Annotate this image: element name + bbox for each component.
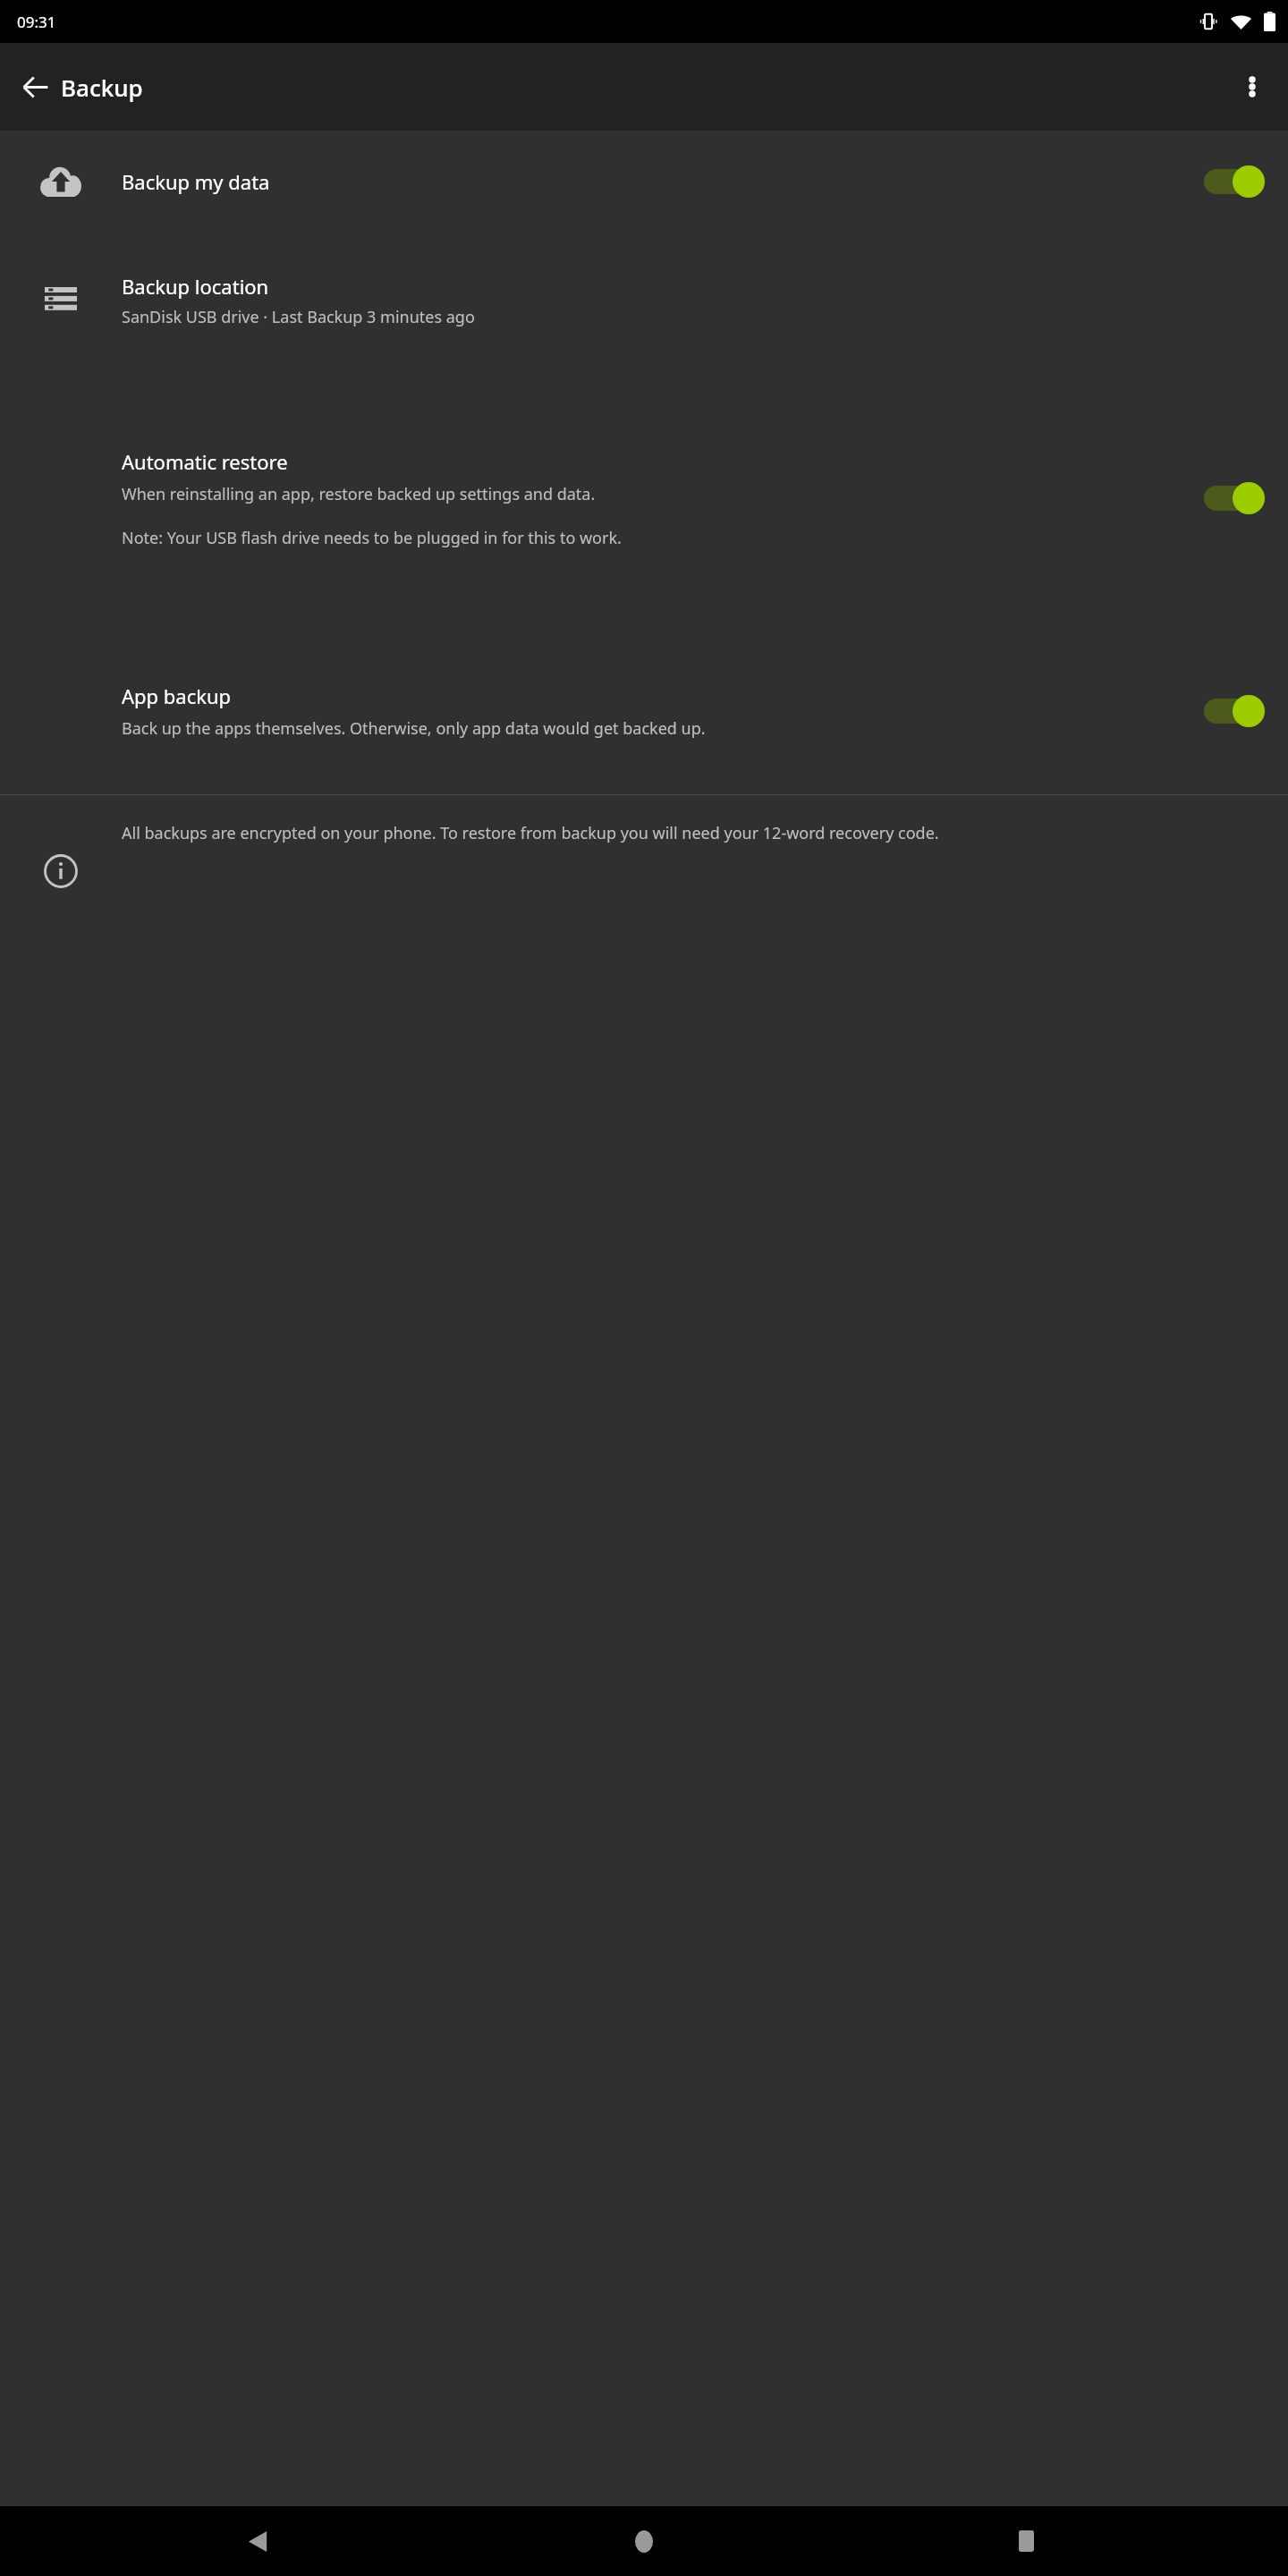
staticText: Backup my data xyxy=(122,168,1204,195)
button[interactable]: Back xyxy=(10,62,60,112)
button[interactable]: More options xyxy=(1227,62,1277,112)
staticText: 09:31 xyxy=(17,12,56,32)
button[interactable]: App backup xyxy=(0,628,1288,794)
staticText: All backups are encrypted on your phone.… xyxy=(122,822,1258,844)
button[interactable]: Toggle xyxy=(1204,164,1265,199)
staticText: Backup location xyxy=(122,273,269,300)
button[interactable]: Backup my data xyxy=(0,131,1288,233)
staticText: Back up the apps themselves. Otherwise, … xyxy=(122,717,706,740)
staticText: SanDisk USB drive · Last Backup 3 minute… xyxy=(122,306,475,328)
staticText: Note: Your USB flash drive needs to be p… xyxy=(122,527,622,549)
button[interactable]: All backups are encrypted on your phone.… xyxy=(0,822,1288,888)
staticText: App backup xyxy=(122,682,232,709)
button[interactable]: Toggle xyxy=(1204,693,1265,729)
button[interactable]: Backup location xyxy=(0,233,1288,369)
staticText: When reinstalling an app, restore backed… xyxy=(122,483,596,505)
button[interactable]: Back xyxy=(231,2514,284,2568)
button[interactable]: Home xyxy=(617,2514,671,2568)
staticText: Backup xyxy=(61,72,143,103)
button[interactable]: Recent apps xyxy=(999,2514,1053,2568)
button[interactable]: Toggle xyxy=(1204,480,1265,516)
staticText: Automatic restore xyxy=(122,448,288,475)
button[interactable]: Automatic restore xyxy=(0,369,1288,628)
